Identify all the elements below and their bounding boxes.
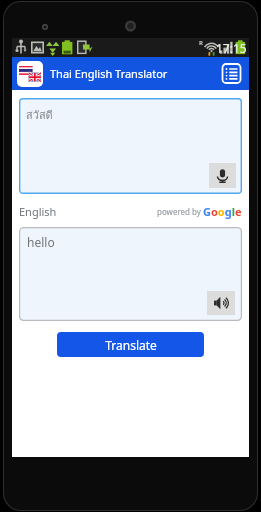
button[interactable]: สวัสดี — [19, 98, 242, 194]
staticText: Thai English Translator — [50, 66, 219, 81]
button[interactable]: hello — [19, 227, 242, 321]
staticText: R — [199, 39, 203, 47]
button[interactable]: Word list — [219, 61, 244, 86]
button[interactable]: Translate — [57, 332, 204, 357]
staticText: hello — [27, 234, 55, 250]
staticText: สวัสดี — [26, 106, 53, 123]
button[interactable]: English — [19, 204, 157, 219]
staticText: 17:15 — [216, 40, 247, 56]
staticText: Translate — [105, 337, 157, 353]
button[interactable]: App icon — [17, 61, 43, 87]
staticText: powered by — [157, 206, 203, 217]
staticText: Google — [203, 204, 242, 219]
button[interactable]: Speak — [209, 163, 236, 188]
button[interactable]: Play pronunciation — [207, 291, 235, 315]
